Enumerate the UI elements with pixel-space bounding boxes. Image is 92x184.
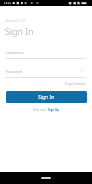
staticText: Version 4.1.37 <box>5 19 26 23</box>
button[interactable]: Sign Up <box>48 108 59 112</box>
button[interactable]: Show password <box>79 67 86 74</box>
staticText: New user? <box>33 108 48 112</box>
staticText: Username <box>6 50 24 55</box>
button[interactable]: Forgot Password <box>46 81 86 87</box>
button[interactable]: Sign In <box>6 91 87 103</box>
staticText: Password <box>6 69 23 74</box>
staticText: Sign In <box>5 25 34 37</box>
staticText: Forgot Password <box>65 82 86 86</box>
staticText: Sign In <box>38 94 55 101</box>
